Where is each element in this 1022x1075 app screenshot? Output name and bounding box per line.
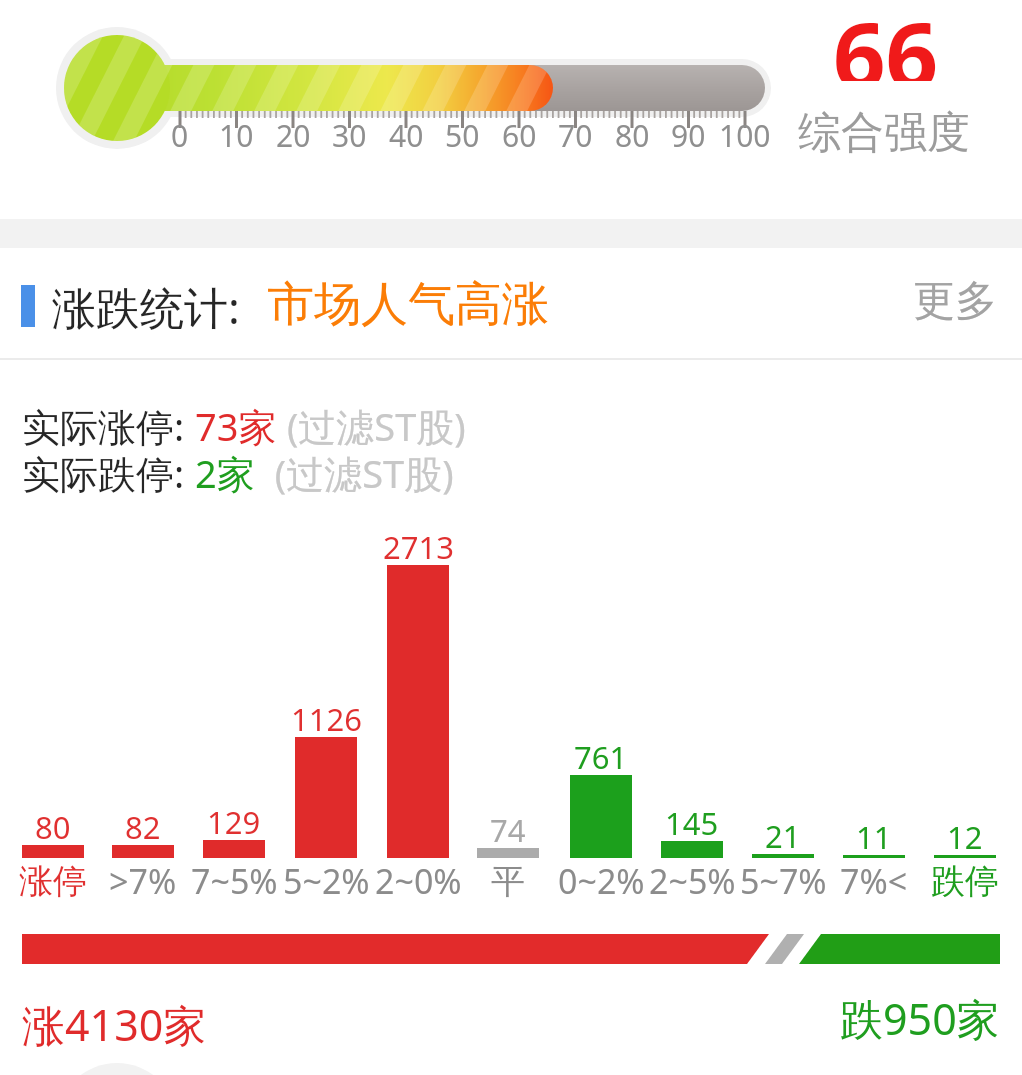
staticText: 11 (856, 816, 892, 858)
staticText: 7~5% (191, 858, 278, 904)
staticText: (过滤ST股) (277, 400, 466, 452)
staticText: 7%< (840, 858, 908, 904)
staticText: 实际跌停: (22, 447, 195, 499)
staticText: 129 (207, 801, 261, 843)
staticText: 0~2% (558, 858, 645, 904)
staticText: 0 (171, 115, 189, 156)
staticText: 涨跌统计: (52, 277, 240, 337)
staticText: 1126 (291, 698, 362, 740)
staticText: 73家 (195, 400, 277, 452)
staticText: 5~2% (283, 858, 370, 904)
staticText: 80 (615, 115, 650, 156)
staticText: 80 (35, 806, 71, 848)
staticText: 2家 (195, 447, 255, 499)
staticText: 10 (219, 115, 254, 156)
staticText: 涨4130家 (22, 995, 207, 1054)
staticText: 66 (833, 0, 939, 81)
staticText: 60 (502, 115, 537, 156)
staticText: 90 (671, 115, 706, 156)
staticText: 实际涨停: (22, 400, 195, 452)
staticText: 市场人气高涨 (267, 275, 549, 334)
staticText: 30 (332, 115, 367, 156)
staticText: 涨停 (19, 860, 87, 903)
staticText: 40 (389, 115, 424, 156)
staticText: 2~5% (649, 858, 736, 904)
staticText: 70 (558, 115, 593, 156)
staticText: 综合强度 (798, 106, 970, 160)
staticText: 761 (574, 736, 628, 778)
staticText: 50 (445, 115, 480, 156)
staticText: 12 (947, 816, 983, 858)
staticText: 21 (765, 815, 801, 857)
staticText: 平 (491, 860, 525, 903)
staticText: 跌停 (931, 860, 999, 903)
staticText: >7% (109, 858, 177, 904)
staticText: (过滤ST股) (255, 447, 454, 499)
staticText: 更多 (913, 275, 997, 328)
staticText: 5~7% (740, 858, 827, 904)
button[interactable]: 更多 (900, 271, 1010, 331)
staticText: 20 (276, 115, 311, 156)
staticText: 74 (490, 809, 526, 851)
staticText: 2713 (383, 526, 454, 568)
staticText: 跌950家 (840, 989, 1000, 1048)
staticText: 100 (719, 115, 771, 156)
staticText: 82 (125, 806, 161, 848)
staticText: 2~0% (375, 858, 462, 904)
staticText: 145 (665, 802, 719, 844)
